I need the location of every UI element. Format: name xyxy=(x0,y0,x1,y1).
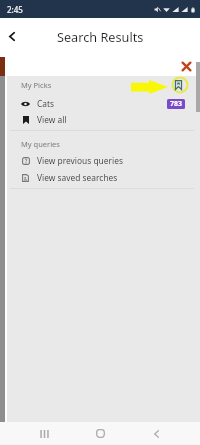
button[interactable]: Cats xyxy=(0,96,200,111)
button[interactable]: Back xyxy=(1,25,23,47)
staticText: 2:45 xyxy=(7,4,23,15)
staticText: View previous queries xyxy=(37,155,123,166)
staticText: View all xyxy=(37,114,67,125)
staticText: Cats xyxy=(37,98,55,109)
button[interactable]: Recent apps xyxy=(30,423,58,444)
staticText: 783 xyxy=(170,99,183,109)
button[interactable]: View saved searches xyxy=(0,170,200,185)
button[interactable]: View all xyxy=(0,112,200,127)
button[interactable]: View previous queries xyxy=(0,153,200,168)
button[interactable]: Home xyxy=(86,423,114,444)
staticText: My queries xyxy=(21,139,60,149)
staticText: View saved searches xyxy=(37,172,118,183)
button[interactable]: Back xyxy=(142,423,170,444)
staticText: My Picks xyxy=(21,80,52,90)
staticText: Search Results xyxy=(57,28,144,45)
